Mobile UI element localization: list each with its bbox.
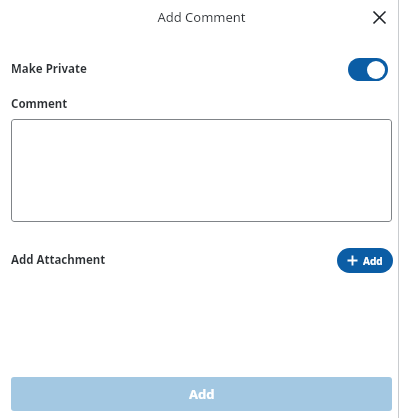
button[interactable]: Add: [11, 377, 392, 411]
staticText: Add: [363, 254, 383, 268]
staticText: Add Attachment: [11, 252, 106, 268]
staticText: Add Comment: [157, 8, 246, 26]
staticText: Comment: [11, 96, 68, 112]
button[interactable]: Add: [337, 248, 393, 273]
button[interactable]: Close: [364, 2, 394, 32]
staticText: Make Private: [11, 61, 87, 77]
staticText: Add: [189, 385, 215, 403]
button[interactable]: Make Private toggle: [348, 58, 388, 81]
button[interactable]: [11, 119, 392, 222]
